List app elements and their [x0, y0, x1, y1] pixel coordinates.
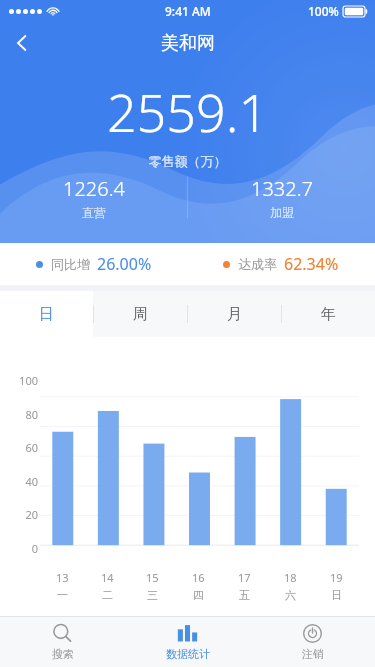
- staticText: 26.00%: [97, 253, 152, 275]
- staticText: 0: [31, 541, 38, 556]
- staticText: 四: [193, 588, 204, 602]
- staticText: 2559.1: [0, 76, 375, 147]
- staticText: 六: [285, 588, 296, 602]
- staticText: 9:41 AM: [165, 3, 211, 19]
- staticText: 搜索: [52, 647, 74, 661]
- staticText: 60: [25, 440, 38, 455]
- staticText: 数据统计: [166, 647, 210, 661]
- staticText: 16: [192, 570, 205, 585]
- staticText: 17: [238, 570, 251, 585]
- staticText: 零售额（万）: [0, 153, 375, 169]
- staticText: 18: [284, 570, 297, 585]
- staticText: 40: [25, 474, 38, 489]
- button[interactable]: 数据统计: [125, 617, 250, 667]
- staticText: 三: [147, 588, 158, 602]
- button[interactable]: 注销: [250, 617, 375, 667]
- staticText: 二: [102, 588, 113, 602]
- staticText: 日: [331, 588, 342, 602]
- staticText: 62.34%: [284, 253, 339, 275]
- staticText: 加盟: [270, 205, 294, 220]
- staticText: 13: [56, 570, 69, 585]
- staticText: 日: [39, 305, 54, 324]
- button[interactable]: 搜索: [0, 617, 125, 667]
- staticText: 月: [227, 305, 242, 324]
- staticText: 美和网: [161, 32, 215, 55]
- staticText: 直营: [82, 205, 106, 220]
- staticText: 一: [57, 588, 68, 602]
- button[interactable]: 周: [93, 291, 187, 337]
- staticText: 五: [239, 588, 250, 602]
- staticText: 达成率: [238, 256, 277, 272]
- button[interactable]: 月: [187, 291, 281, 337]
- staticText: 80: [25, 407, 38, 422]
- staticText: 100: [19, 373, 38, 388]
- staticText: 注销: [302, 647, 324, 661]
- staticText: 20: [25, 507, 38, 522]
- staticText: 19: [330, 570, 343, 585]
- staticText: 年: [321, 305, 336, 324]
- staticText: 同比增: [51, 256, 90, 272]
- staticText: 14: [101, 570, 114, 585]
- button[interactable]: 日: [0, 291, 93, 337]
- staticText: 1332.7: [251, 175, 313, 202]
- staticText: 周: [133, 305, 148, 324]
- button[interactable]: 年: [281, 291, 375, 337]
- staticText: 100%: [308, 3, 339, 19]
- staticText: 15: [146, 570, 159, 585]
- button[interactable]: Back: [0, 22, 44, 64]
- staticText: 1226.4: [63, 175, 125, 202]
